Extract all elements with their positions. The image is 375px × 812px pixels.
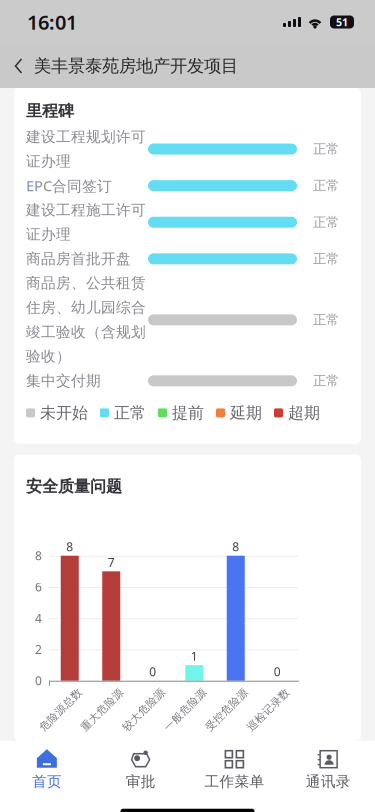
staticText: 4: [35, 610, 42, 626]
staticText: 建设工程施工许可证办理: [26, 201, 146, 243]
staticText: 危险源总数: [33, 703, 88, 716]
staticText: 集中交付期: [26, 372, 101, 390]
staticText: 首页: [32, 773, 62, 791]
staticText: 里程碑: [26, 101, 74, 121]
staticText: 重大危险源: [75, 703, 130, 716]
staticText: 延期: [230, 403, 262, 423]
staticText: 2: [35, 641, 42, 657]
staticText: 商品房首批开盘: [26, 250, 131, 268]
staticText: 51: [336, 15, 348, 29]
staticText: 正常: [313, 177, 339, 194]
staticText: 6: [35, 579, 42, 595]
staticText: 受控危险源: [199, 703, 254, 716]
staticText: 8: [66, 539, 73, 555]
staticText: 提前: [172, 403, 204, 423]
staticText: 安全质量问题: [26, 477, 122, 496]
staticText: 建设工程规划许可证办理: [26, 128, 146, 170]
staticText: 正常: [313, 141, 339, 157]
staticText: 商品房、公共租赁住房、幼儿园综合竣工验收（含规划验收）: [26, 274, 146, 365]
staticText: EPC合同签订: [26, 176, 112, 195]
staticText: 工作菜单: [204, 773, 264, 791]
staticText: 通讯录: [306, 773, 351, 791]
button[interactable]: 返回: [0, 46, 34, 86]
staticText: 美丰景泰苑房地产开发项目: [34, 55, 238, 77]
staticText: 巡检记录数: [241, 703, 296, 716]
staticText: 一般危险源: [158, 703, 213, 716]
staticText: 正常: [313, 214, 339, 230]
staticText: 0: [274, 664, 281, 680]
button[interactable]: 审批: [94, 741, 188, 791]
button[interactable]: 工作菜单: [187, 741, 281, 791]
staticText: 正常: [313, 373, 339, 389]
staticText: 正常: [114, 403, 146, 423]
button[interactable]: 通讯录: [281, 741, 375, 791]
staticText: 16:01: [27, 9, 77, 35]
staticText: 8: [35, 548, 42, 564]
staticText: 1: [191, 648, 198, 664]
staticText: 较大危险源: [116, 703, 171, 716]
staticText: 审批: [126, 773, 156, 791]
staticText: 超期: [288, 403, 320, 423]
staticText: 正常: [313, 312, 339, 328]
staticText: 0: [149, 664, 156, 680]
staticText: 正常: [313, 251, 339, 267]
staticText: 8: [232, 539, 239, 555]
button[interactable]: 首页: [0, 741, 94, 791]
staticText: 7: [108, 554, 115, 570]
staticText: 0: [35, 673, 42, 689]
staticText: 未开始: [40, 403, 88, 423]
